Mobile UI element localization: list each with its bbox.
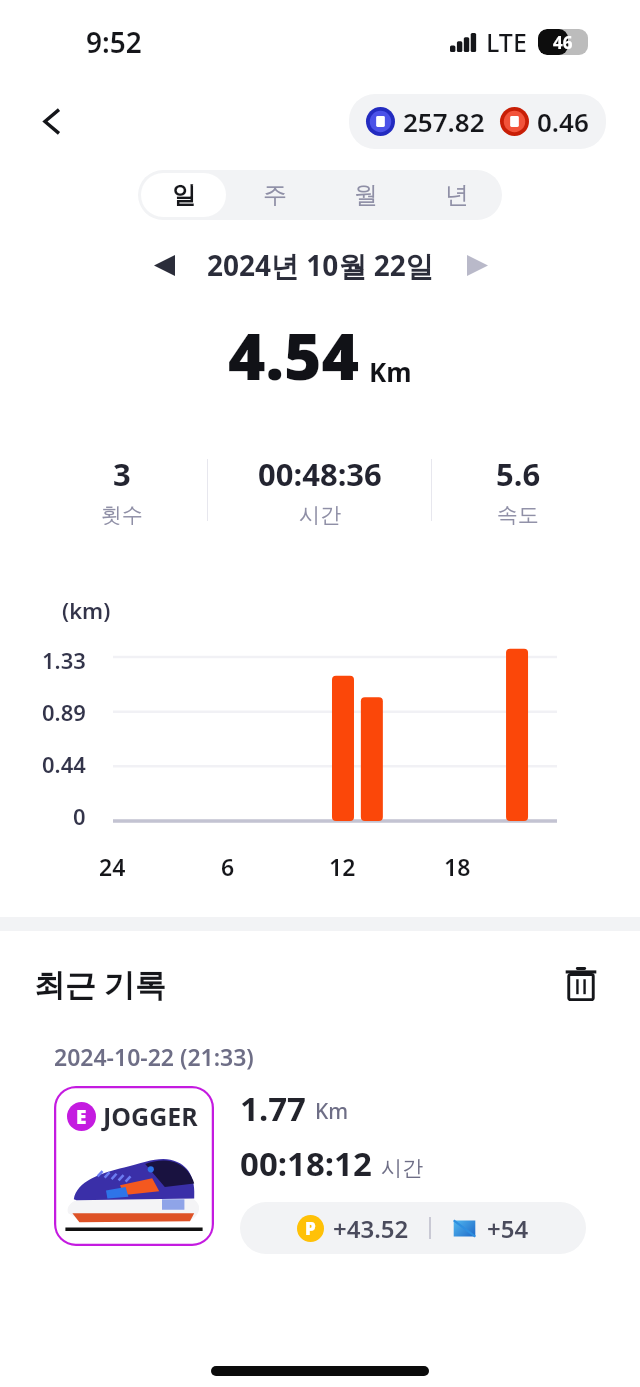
staticText: 1.33 bbox=[42, 645, 86, 675]
staticText: 46 bbox=[553, 31, 573, 54]
staticText: (km) bbox=[62, 595, 111, 625]
button[interactable]: 월 bbox=[323, 173, 408, 217]
staticText: 257.82 bbox=[403, 104, 485, 139]
button[interactable]: 년 bbox=[414, 173, 499, 217]
staticText: LTE bbox=[486, 25, 527, 59]
staticText: 일 bbox=[172, 180, 196, 210]
staticText: 1.77 bbox=[240, 1086, 306, 1131]
button[interactable]: Back bbox=[26, 95, 78, 147]
staticText: 00:48:36 bbox=[258, 453, 382, 495]
staticText: +54 bbox=[487, 1212, 529, 1245]
staticText: Km bbox=[315, 1097, 349, 1126]
staticText: P bbox=[305, 1217, 316, 1240]
staticText: 년 bbox=[445, 180, 469, 210]
staticText: 6 bbox=[221, 851, 235, 882]
button[interactable]: Next day bbox=[454, 242, 500, 288]
staticText: 시간 bbox=[381, 1155, 423, 1181]
staticText: 시간 bbox=[299, 502, 341, 528]
staticText: 9:52 bbox=[86, 23, 142, 61]
staticText: 0.89 bbox=[42, 697, 86, 727]
staticText: 4.54 bbox=[228, 312, 360, 399]
staticText: 속도 bbox=[497, 502, 539, 528]
staticText: JOGGER bbox=[103, 1099, 198, 1133]
button[interactable]: P bbox=[240, 1202, 586, 1254]
staticText: 횟수 bbox=[101, 502, 143, 528]
staticText: 월 bbox=[354, 180, 378, 210]
staticText: 주 bbox=[263, 180, 287, 210]
staticText: 최근 기록 bbox=[34, 963, 167, 1005]
staticText: 2024-10-22 (21:33) bbox=[54, 1041, 254, 1072]
staticText: 24 bbox=[99, 851, 126, 882]
button[interactable]: 주 bbox=[232, 173, 317, 217]
staticText: 5.6 bbox=[496, 453, 541, 495]
button[interactable]: Delete records bbox=[554, 957, 608, 1011]
staticText: 00:18:12 bbox=[240, 1141, 372, 1186]
staticText: +43.52 bbox=[333, 1212, 409, 1245]
staticText: 12 bbox=[329, 851, 356, 882]
staticText: 2024년 10월 22일 bbox=[207, 246, 434, 284]
staticText: 18 bbox=[444, 851, 471, 882]
staticText: E bbox=[76, 1104, 87, 1130]
button[interactable]: 257.82 bbox=[349, 94, 606, 149]
button[interactable]: 2024-10-22 (21:33) bbox=[36, 1023, 604, 1272]
staticText: 3 bbox=[113, 453, 131, 495]
staticText: 0 bbox=[73, 801, 86, 831]
staticText: 0.44 bbox=[42, 749, 86, 779]
button[interactable]: 일 bbox=[141, 173, 226, 217]
staticText: 0.46 bbox=[537, 104, 589, 139]
button[interactable]: Previous day bbox=[141, 242, 187, 288]
staticText: Km bbox=[369, 354, 412, 389]
button[interactable]: 3 bbox=[36, 431, 604, 549]
